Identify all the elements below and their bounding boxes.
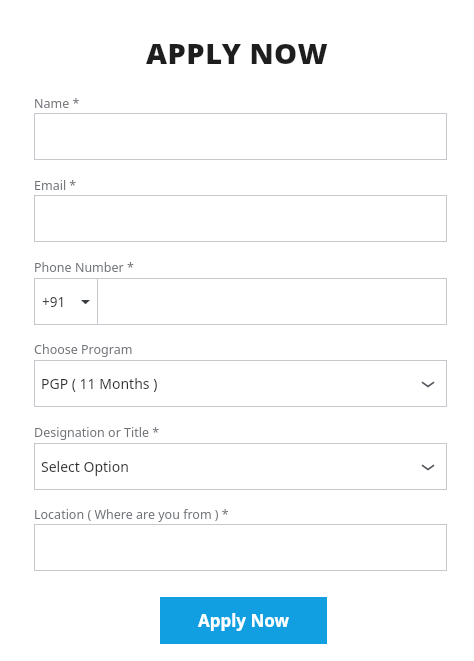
staticText: Apply Now bbox=[198, 609, 290, 632]
button[interactable]: Select Option bbox=[34, 443, 447, 490]
staticText: Designation or Title * bbox=[34, 424, 160, 441]
button[interactable]: PGP ( 11 Months ) bbox=[34, 360, 447, 407]
button[interactable] bbox=[34, 524, 447, 571]
staticText: APPLY NOW bbox=[0, 33, 474, 72]
staticText: Phone Number * bbox=[34, 259, 134, 276]
staticText: Select Option bbox=[41, 457, 420, 476]
staticText: Name * bbox=[34, 95, 80, 112]
button[interactable] bbox=[98, 278, 447, 325]
button[interactable] bbox=[34, 113, 447, 160]
button[interactable]: Apply Now bbox=[160, 597, 327, 644]
staticText: +91 bbox=[42, 293, 66, 311]
staticText: PGP ( 11 Months ) bbox=[41, 374, 420, 393]
staticText: Choose Program bbox=[34, 341, 133, 358]
staticText: Email * bbox=[34, 177, 77, 194]
button[interactable]: Select country code bbox=[34, 278, 97, 325]
button[interactable] bbox=[34, 195, 447, 242]
staticText: Location ( Where are you from ) * bbox=[34, 506, 229, 523]
